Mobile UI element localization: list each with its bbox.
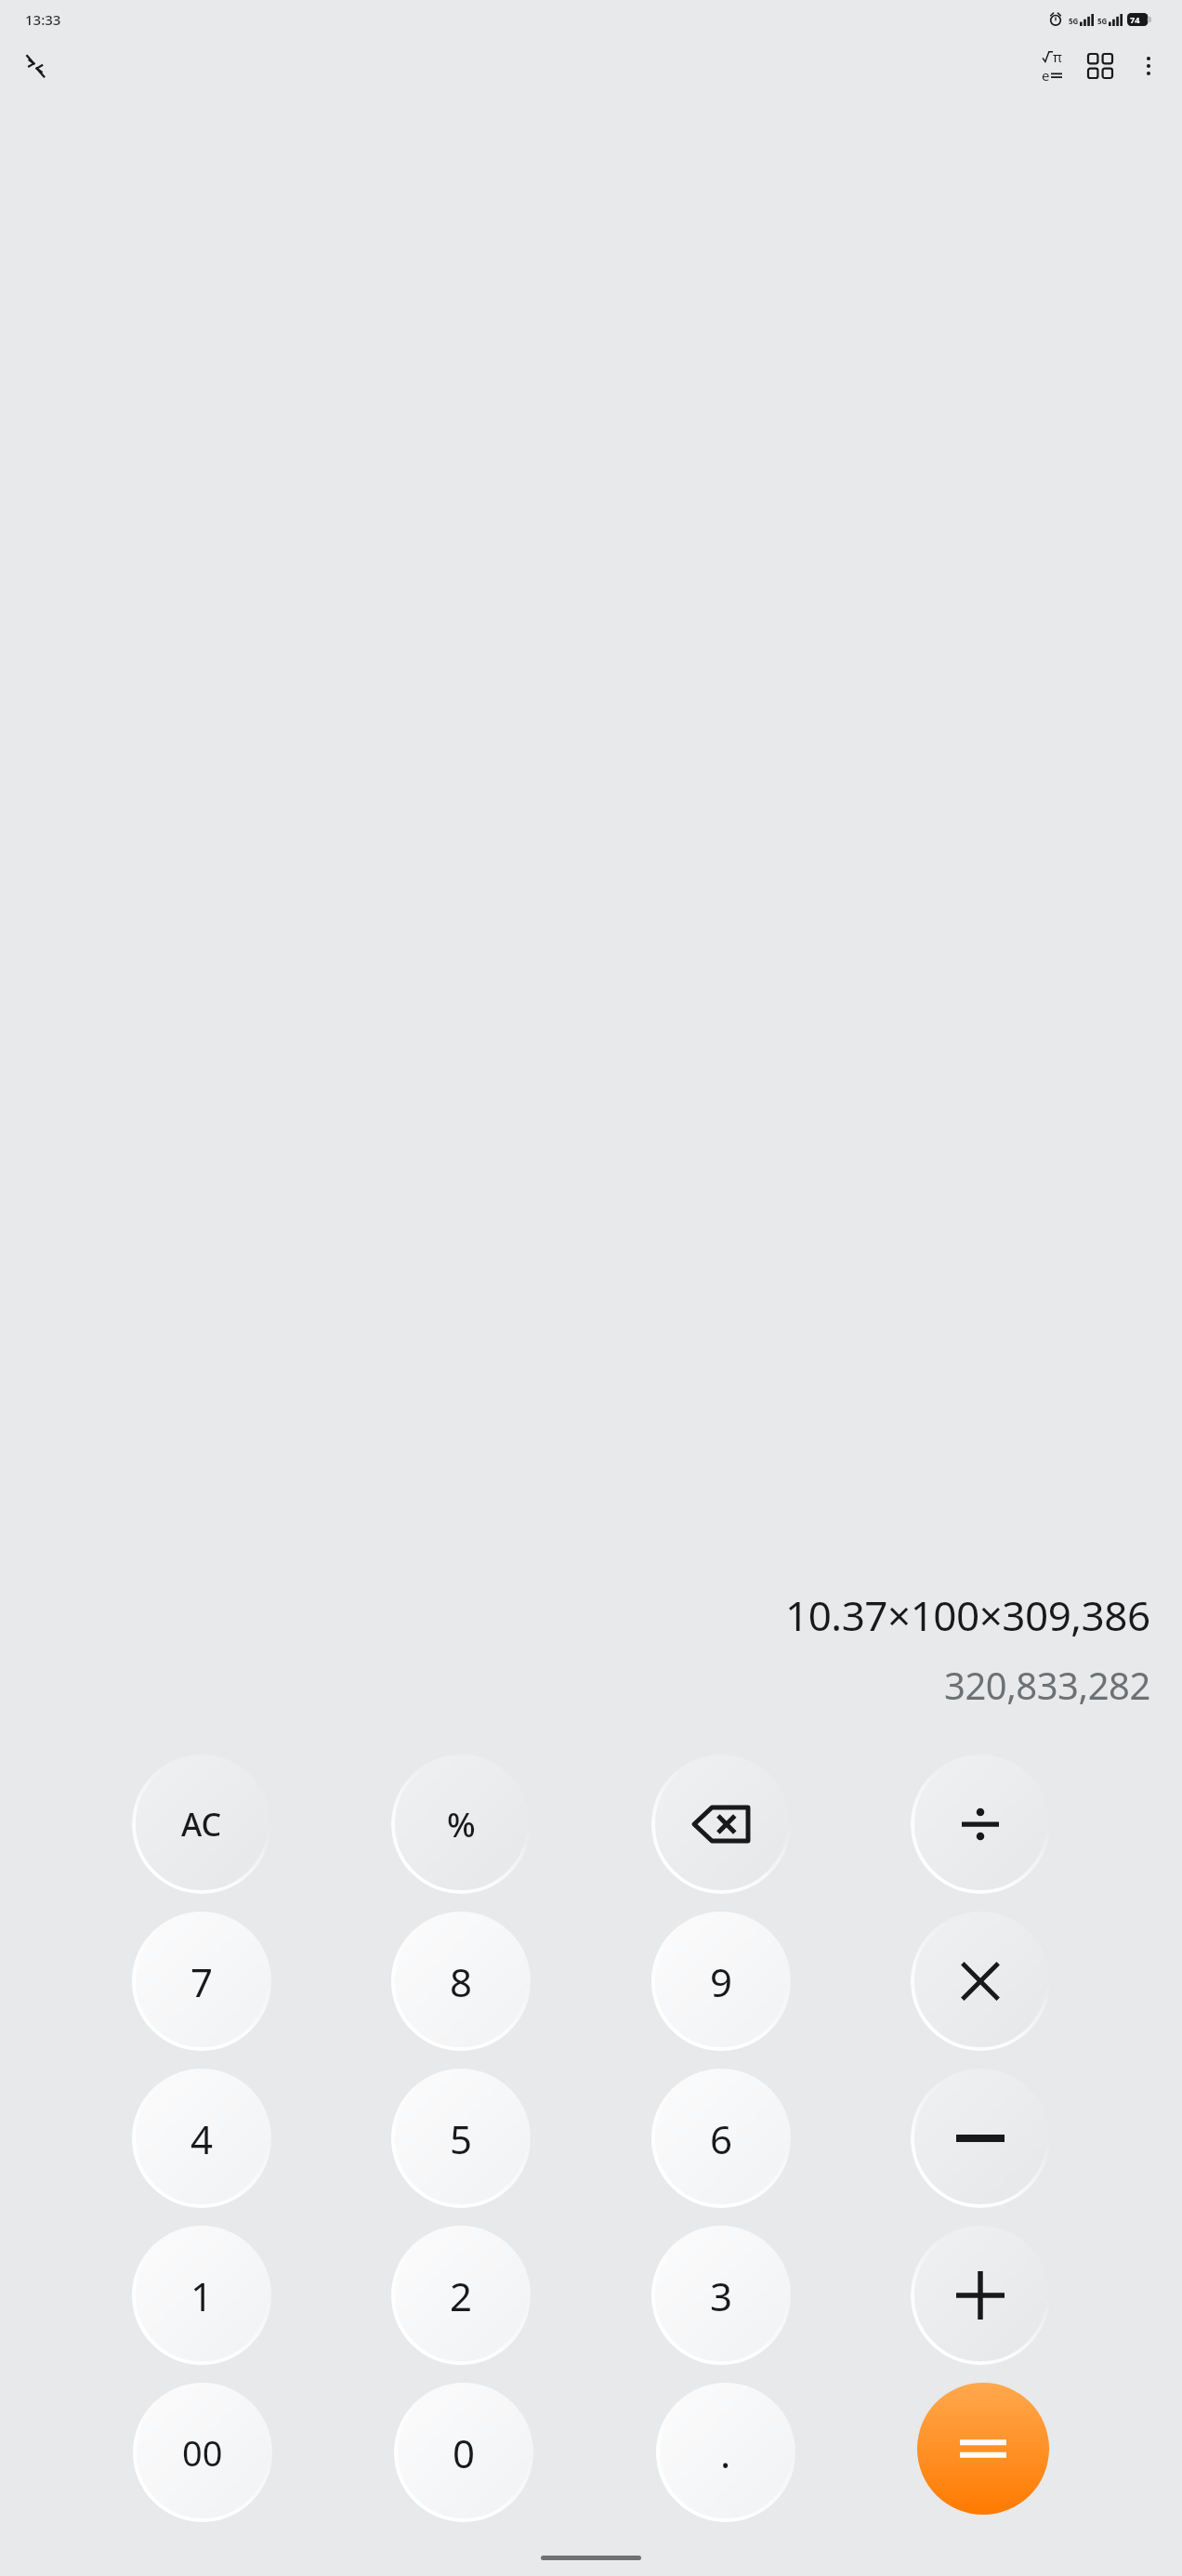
button[interactable]: 00 xyxy=(133,2383,272,2522)
button[interactable]: Scientific mode xyxy=(1028,42,1076,90)
staticText: 2 xyxy=(450,2269,473,2322)
button[interactable]: Backspace xyxy=(651,1755,791,1894)
staticText: 6 xyxy=(710,2112,733,2165)
staticText: 9 xyxy=(710,1955,733,2008)
button[interactable]: % xyxy=(391,1755,531,1894)
staticText: 320,833,282 xyxy=(944,1660,1150,1710)
staticText: 00 xyxy=(182,2428,223,2477)
button[interactable] xyxy=(911,2069,1050,2208)
button[interactable]: History xyxy=(1076,42,1124,90)
button[interactable]: 5 xyxy=(391,2069,531,2208)
button[interactable]: 1 xyxy=(132,2226,271,2365)
staticText: π xyxy=(1053,47,1062,66)
button[interactable] xyxy=(911,2226,1050,2365)
button[interactable]: 4 xyxy=(132,2069,271,2208)
button[interactable]: 2 xyxy=(391,2226,531,2365)
staticText: . xyxy=(720,2426,731,2479)
button[interactable]: . xyxy=(656,2383,795,2522)
button[interactable]: 8 xyxy=(391,1912,531,2051)
staticText: 74 xyxy=(1130,14,1140,25)
staticText: 1 xyxy=(190,2269,214,2322)
button[interactable]: AC xyxy=(132,1755,271,1894)
staticText: e xyxy=(1042,66,1050,85)
button[interactable]: 9 xyxy=(651,1912,791,2051)
staticText: 7 xyxy=(190,1955,214,2008)
button[interactable]: More options xyxy=(1124,42,1173,90)
staticText: AC xyxy=(181,1803,222,1846)
button[interactable] xyxy=(911,1912,1050,2051)
button[interactable]: 6 xyxy=(651,2069,791,2208)
staticText: 5 xyxy=(450,2112,473,2165)
staticText: 5G xyxy=(1069,16,1079,26)
staticText: 5G xyxy=(1097,16,1108,26)
staticText: 0 xyxy=(453,2426,476,2479)
button[interactable]: 3 xyxy=(651,2226,791,2365)
staticText: 4 xyxy=(190,2112,214,2165)
button[interactable]: 0 xyxy=(394,2383,533,2522)
staticText: 3 xyxy=(710,2269,733,2322)
button[interactable] xyxy=(911,1755,1050,1894)
button[interactable]: Collapse xyxy=(13,44,58,88)
staticText: 8 xyxy=(450,1955,473,2008)
staticText: 13:33 xyxy=(25,10,61,29)
button[interactable]: 7 xyxy=(132,1912,271,2051)
button[interactable] xyxy=(917,2383,1049,2515)
staticText: % xyxy=(447,1802,476,1847)
staticText: 10.37×100×309,386 xyxy=(785,1587,1150,1643)
